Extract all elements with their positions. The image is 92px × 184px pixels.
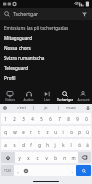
button[interactable]: ö [75, 139, 83, 150]
button[interactable]: g [35, 139, 43, 150]
button[interactable]: , [14, 165, 22, 176]
staticText: Account [77, 98, 90, 102]
button[interactable]: . [68, 165, 76, 176]
button[interactable]: Account [74, 88, 92, 104]
button[interactable]: d [19, 139, 27, 150]
staticText: Tschertgar [57, 98, 73, 102]
button[interactable]: n [60, 152, 69, 163]
button[interactable]: s [10, 139, 19, 150]
button[interactable]: Emissiuns las pli tschertgadas [0, 23, 92, 33]
staticText: b [54, 155, 57, 161]
staticText: 7 [58, 116, 61, 122]
button[interactable]: Audios [19, 88, 38, 104]
staticText: q [4, 129, 7, 135]
staticText: f [30, 142, 32, 148]
button[interactable]: w [10, 126, 19, 137]
button[interactable]: j [51, 139, 59, 150]
staticText: ö [78, 142, 81, 148]
button[interactable]: 7 [55, 113, 64, 124]
staticText: n [63, 155, 66, 161]
button[interactable]: y [15, 152, 24, 163]
button[interactable]: 4 [28, 113, 37, 124]
staticText: r [30, 129, 32, 135]
button[interactable]: x [24, 152, 33, 163]
staticText: Audios [23, 98, 34, 102]
staticText: o [70, 129, 73, 135]
staticText: d [22, 142, 25, 148]
button[interactable]: o [67, 126, 75, 137]
staticText: x [27, 155, 30, 161]
button[interactable]: h [43, 139, 51, 150]
button[interactable]: r [27, 126, 35, 137]
staticText: u [54, 129, 57, 135]
staticText: 1 [4, 116, 7, 122]
staticText: . [71, 168, 73, 174]
staticText: ä [86, 142, 89, 148]
staticText: Svizra rumantscha [4, 55, 45, 61]
button[interactable]: ?123 [1, 165, 14, 176]
button[interactable]: k [59, 139, 67, 150]
button[interactable]: 9 [73, 113, 82, 124]
button[interactable]: Live [38, 88, 56, 104]
button[interactable]: t [35, 126, 43, 137]
staticText: y [18, 155, 21, 161]
button[interactable]: jn [34, 104, 58, 111]
button[interactable]: 3 [19, 113, 28, 124]
button[interactable]: Videos [0, 88, 19, 104]
button[interactable] [22, 165, 30, 176]
staticText: 8 [67, 116, 70, 122]
button[interactable]: i [59, 126, 67, 137]
staticText: Emissiuns las pli tschertgadas [4, 25, 69, 31]
staticText: p [78, 129, 81, 135]
button[interactable]: 2 [10, 113, 19, 124]
button[interactable]: 0 [82, 113, 91, 124]
button[interactable]: 1 [1, 113, 10, 124]
button[interactable]: l [67, 139, 75, 150]
staticText: 2 [13, 116, 16, 122]
button[interactable]: f [27, 139, 35, 150]
button[interactable]: u [51, 126, 59, 137]
button[interactable]: e [19, 126, 27, 137]
button[interactable]: Svizra rumantscha [0, 53, 92, 63]
button[interactable]: Search [76, 165, 91, 176]
staticText: a [4, 142, 7, 148]
button[interactable]: Filter [80, 10, 88, 18]
button[interactable] [1, 152, 15, 163]
button[interactable]: m [69, 152, 78, 163]
button[interactable]: q [1, 126, 10, 137]
staticText: 5 [40, 116, 43, 122]
button[interactable]: b [51, 152, 60, 163]
button[interactable]: 6 [46, 113, 55, 124]
staticText: Tschertgar [13, 11, 80, 18]
button[interactable]: z [43, 126, 51, 137]
button[interactable]: 5 [37, 113, 46, 124]
button[interactable]: c [33, 152, 42, 163]
button[interactable]: ü [83, 126, 91, 137]
staticText: v [45, 155, 48, 161]
button[interactable]: a [1, 139, 10, 150]
button[interactable]: v [42, 152, 51, 163]
staticText: h [46, 142, 49, 148]
button[interactable]: Microphone [83, 104, 92, 111]
staticText: , [17, 168, 19, 174]
button[interactable]: 8 [64, 113, 73, 124]
button[interactable]: c'ercl [10, 104, 33, 111]
button[interactable]: Mitagsguard [0, 33, 92, 43]
button[interactable]: Profil [0, 73, 92, 83]
button[interactable]: Telesguard [0, 63, 92, 73]
button[interactable] [78, 152, 91, 163]
staticText: m [71, 155, 76, 161]
staticText: Mitagsguard [4, 35, 32, 41]
button[interactable]: Tschertgar [56, 88, 74, 104]
staticText: Videos [5, 98, 15, 102]
staticText: ü [86, 129, 89, 135]
button[interactable]: Tschertgar [0, 8, 92, 20]
staticText: l [70, 142, 72, 148]
button[interactable]: ä [83, 139, 91, 150]
staticText: j [54, 142, 56, 148]
button[interactable]: muos [59, 104, 83, 111]
button[interactable]: Voice search [0, 104, 10, 111]
button[interactable]: p [75, 126, 83, 137]
button[interactable]: Nossa chors [0, 43, 92, 53]
